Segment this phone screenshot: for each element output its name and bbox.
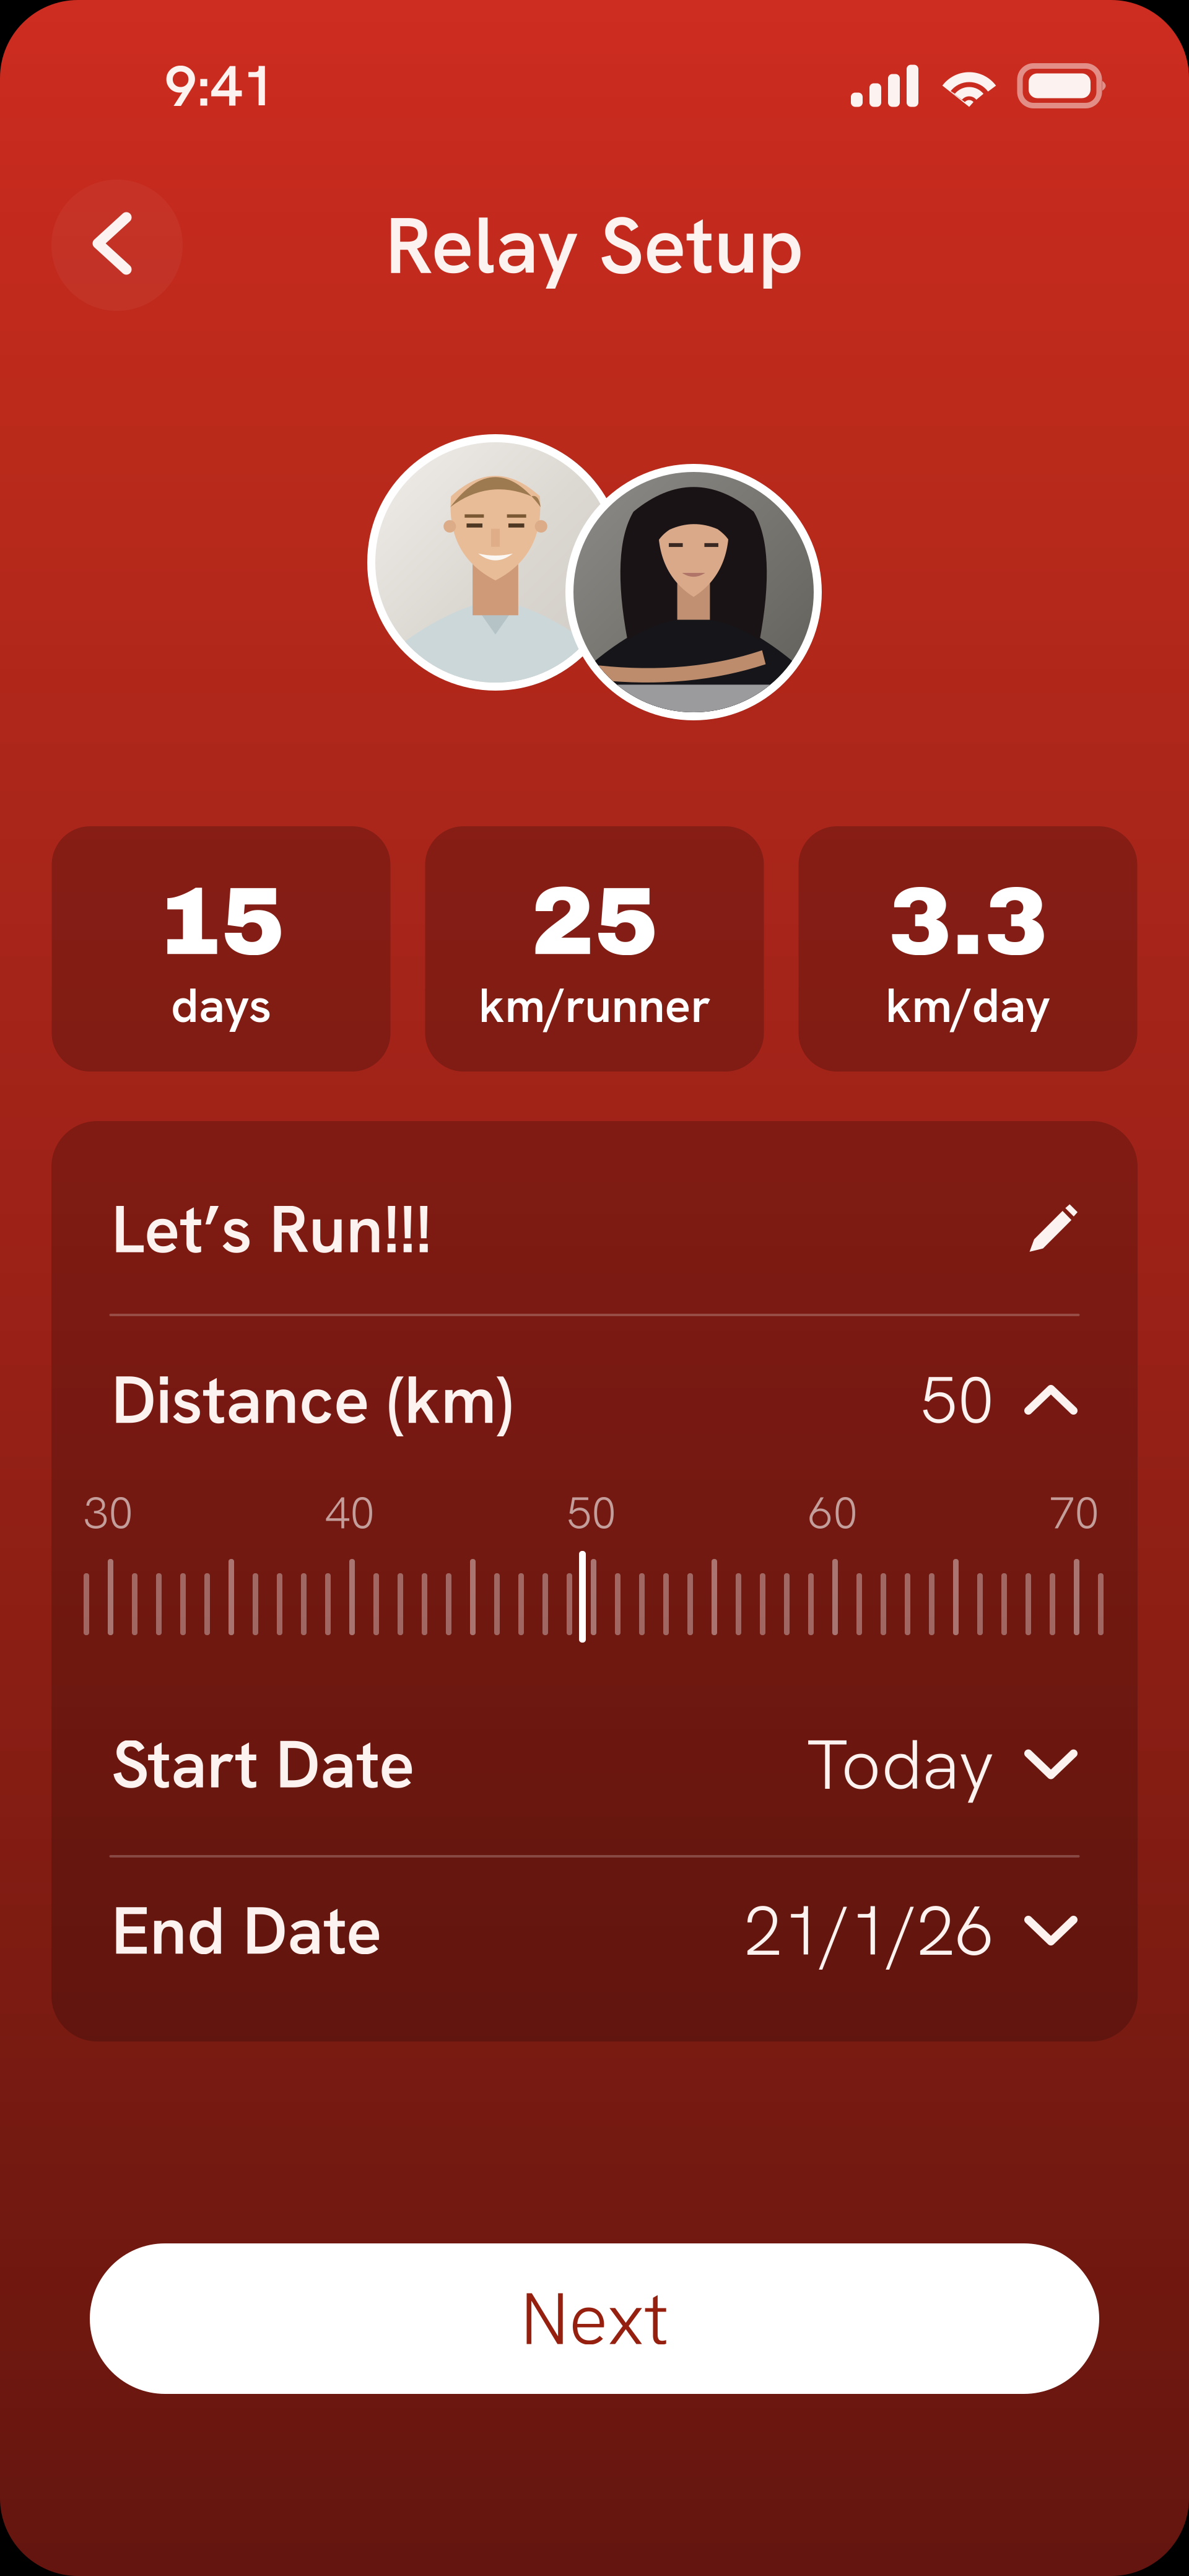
staticText: Start Date xyxy=(111,1721,415,1807)
button[interactable]: Distance (km) xyxy=(51,1316,1138,1483)
staticText: Next xyxy=(520,2271,669,2366)
staticText: 15 xyxy=(157,870,285,974)
staticText: Let’s Run!!! xyxy=(111,1186,432,1272)
staticText: 50 xyxy=(920,1357,995,1443)
staticText: 40 xyxy=(325,1484,375,1542)
staticText: 60 xyxy=(808,1484,858,1542)
button[interactable]: Back xyxy=(51,180,183,311)
staticText: 70 xyxy=(1050,1484,1099,1542)
staticText: Distance (km) xyxy=(111,1357,513,1443)
staticText: 25 xyxy=(531,870,658,974)
staticText: 9:41 xyxy=(165,49,275,123)
staticText: km/day xyxy=(885,974,1051,1037)
button[interactable]: Next xyxy=(90,2243,1099,2394)
staticText: End Date xyxy=(111,1888,382,1974)
staticText: Relay Setup xyxy=(385,194,804,296)
button[interactable]: End Date xyxy=(51,1858,1138,2004)
staticText: days xyxy=(171,974,271,1037)
staticText: km/runner xyxy=(478,974,711,1037)
staticText: 30 xyxy=(84,1484,133,1542)
staticText: 21/1/26 xyxy=(744,1885,995,1976)
button[interactable]: Let’s Run!!! xyxy=(51,1121,1138,1314)
staticText: 3.3 xyxy=(888,870,1048,974)
staticText: Today xyxy=(807,1719,995,1809)
button[interactable]: Start Date xyxy=(51,1674,1138,1855)
staticText: 50 xyxy=(567,1484,616,1542)
